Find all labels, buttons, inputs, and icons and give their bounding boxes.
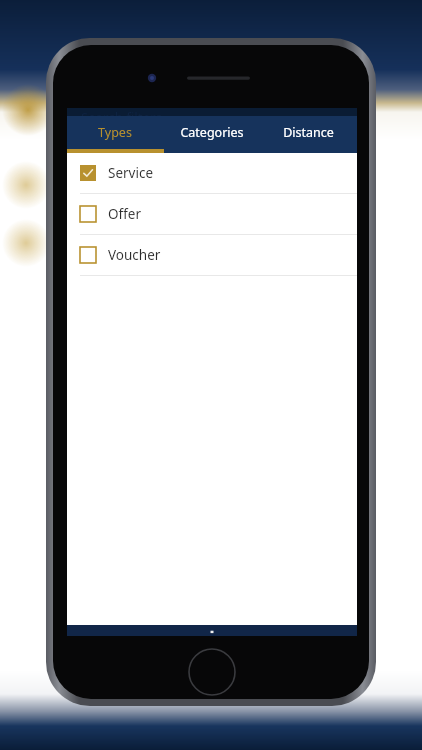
staticText: Distance [283, 124, 334, 141]
button[interactable]: Offer [67, 194, 357, 234]
staticText: Service [108, 164, 154, 182]
staticText: Offer [108, 205, 142, 223]
button[interactable]: Service [67, 153, 357, 193]
staticText: Categories [180, 124, 244, 141]
button[interactable]: Categories [163, 116, 260, 149]
staticText: Voucher [108, 246, 161, 264]
button[interactable]: Voucher [67, 235, 357, 275]
button[interactable]: Distance [260, 116, 357, 149]
button[interactable]: Types [67, 116, 163, 149]
staticText: Types [98, 124, 132, 141]
